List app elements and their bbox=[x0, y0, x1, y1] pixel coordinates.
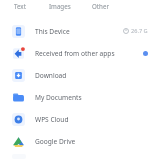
staticText: 26.7 G bbox=[131, 27, 148, 35]
staticText: My Documents bbox=[35, 93, 82, 102]
staticText: Text bbox=[14, 2, 26, 10]
other: Received from other apps bbox=[12, 47, 25, 60]
button[interactable]: Received from other apps bbox=[0, 42, 160, 64]
other: WPS Cloud bbox=[12, 113, 25, 126]
button[interactable]: Download bbox=[0, 64, 160, 86]
button[interactable]: My Documents bbox=[0, 86, 160, 108]
staticText: Received from other apps bbox=[35, 49, 115, 58]
button[interactable]: This Device bbox=[0, 20, 160, 42]
other: Download bbox=[12, 69, 25, 82]
other: My Documents bbox=[12, 91, 25, 104]
staticText: Other bbox=[92, 2, 109, 10]
staticText: Google Drive bbox=[35, 137, 76, 146]
button[interactable]: Other bbox=[80, 0, 120, 12]
button[interactable]: WPS Cloud bbox=[0, 108, 160, 130]
button[interactable]: Text bbox=[0, 0, 40, 12]
button[interactable]: Images bbox=[40, 0, 80, 12]
button[interactable]: Google Drive bbox=[0, 130, 160, 152]
staticText: WPS Cloud bbox=[35, 115, 69, 124]
other: This Device bbox=[12, 25, 25, 38]
staticText: This Device bbox=[35, 27, 70, 36]
other: Google Drive bbox=[12, 135, 25, 148]
staticText: Images bbox=[49, 2, 71, 10]
staticText: Download bbox=[35, 71, 67, 80]
